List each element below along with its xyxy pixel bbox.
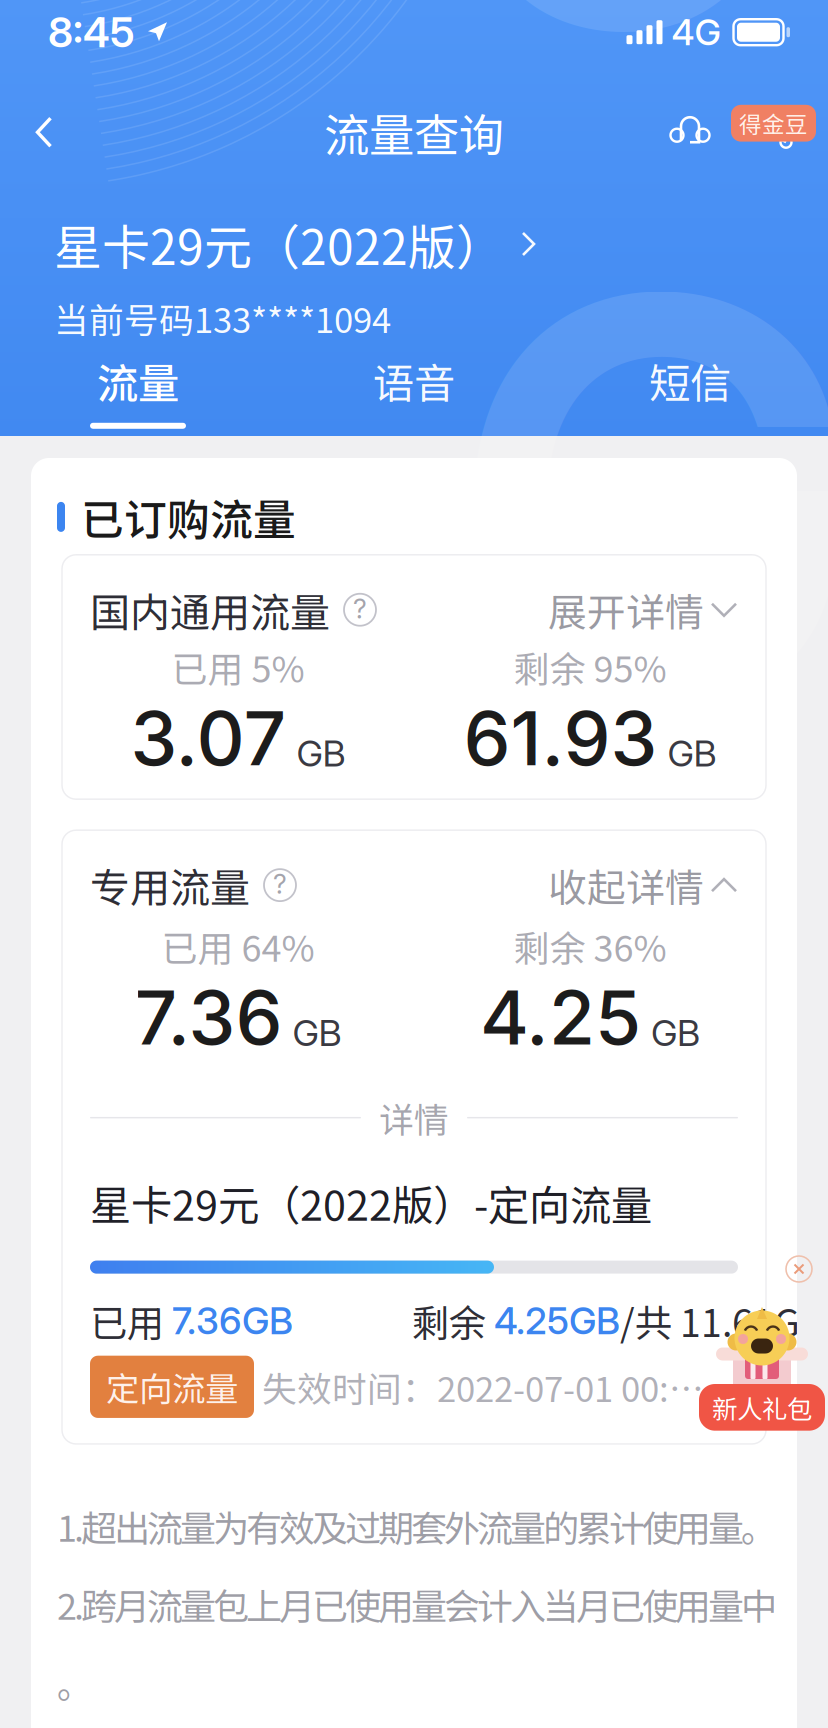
staticText: 定向流量 xyxy=(106,1363,238,1411)
staticText: 得金豆 xyxy=(739,107,808,140)
staticText: ? xyxy=(273,868,287,900)
button[interactable]: 分享 xyxy=(746,100,810,164)
button[interactable]: 流量 xyxy=(0,351,276,429)
staticText: 3.07 xyxy=(130,693,286,783)
staticText: 流量 xyxy=(97,351,179,411)
staticText: 。 xyxy=(57,1656,93,1708)
staticText: 当前号码133****1094 xyxy=(54,293,391,343)
button[interactable]: 星卡29元（2022版） xyxy=(54,209,537,279)
button[interactable]: 客服 xyxy=(658,100,722,164)
staticText: GB xyxy=(292,1011,341,1055)
staticText: 5G xyxy=(446,0,828,840)
staticText: ? xyxy=(353,593,367,625)
staticText: /共 11.61GB xyxy=(620,1294,825,1348)
staticText: 星卡29元（2022版）-定向流量 xyxy=(90,1173,652,1233)
staticText: 4.25 xyxy=(480,972,641,1062)
staticText: 4.25GB xyxy=(494,1298,620,1343)
staticText: 剩余 36% xyxy=(513,920,666,972)
staticText: 专用流量 xyxy=(90,856,250,914)
button[interactable]: 短信 xyxy=(552,351,828,429)
staticText: GB xyxy=(667,732,716,775)
button[interactable]: 展开详情 xyxy=(548,582,738,638)
staticText: 7.36 xyxy=(134,972,282,1062)
button[interactable]: 得金豆 xyxy=(731,105,816,142)
staticText: 61.93 xyxy=(463,693,657,783)
staticText: 已用 xyxy=(90,1294,172,1348)
staticText: 已用 5% xyxy=(171,641,304,693)
staticText: 7.36GB xyxy=(172,1298,293,1343)
staticText: 收起详情 xyxy=(548,857,704,913)
staticText: 4G xyxy=(671,10,721,54)
button[interactable]: 关闭 xyxy=(784,1254,814,1284)
staticText: 语音 xyxy=(373,351,455,411)
staticText: GB xyxy=(651,1011,700,1055)
staticText: 星卡29元（2022版） xyxy=(54,209,504,279)
staticText: 剩余 xyxy=(412,1294,494,1348)
staticText: 8:45 xyxy=(48,7,135,57)
staticText: 失效时间：2022-07-01 00:00:00 xyxy=(262,1362,718,1412)
staticText: 国内通用流量 xyxy=(90,581,330,639)
staticText: 已用 64% xyxy=(161,920,314,972)
staticText: 剩余 95% xyxy=(513,641,666,693)
staticText: 短信 xyxy=(649,351,731,411)
button[interactable]: 语音 xyxy=(276,351,552,429)
staticText: GB xyxy=(296,732,345,775)
button[interactable]: 新人礼包 xyxy=(699,1302,825,1441)
staticText: 新人礼包 xyxy=(712,1389,812,1426)
staticText: 流量查询 xyxy=(324,99,504,165)
button[interactable]: 收起详情 xyxy=(548,857,738,913)
staticText: 展开详情 xyxy=(548,582,704,638)
button[interactable]: 返回 xyxy=(12,100,76,164)
staticText: 1.超出流量为有效及过期套外流量的累计使用量。 xyxy=(57,1500,777,1552)
staticText: 2.跨月流量包上月已使用量会计入当月已使用量中 xyxy=(57,1578,777,1630)
staticText: 已订购流量 xyxy=(81,486,296,548)
staticText: 详情 xyxy=(379,1093,449,1143)
